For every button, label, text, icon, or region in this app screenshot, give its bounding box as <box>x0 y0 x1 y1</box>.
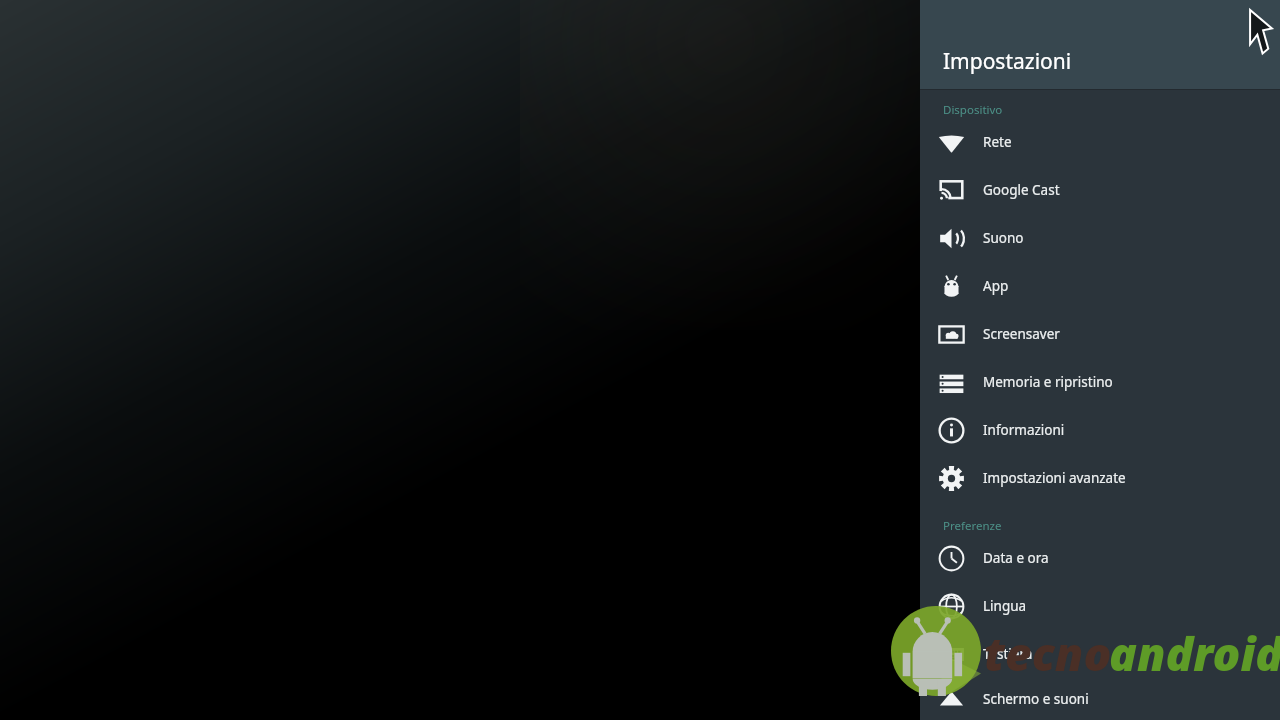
button[interactable]: Memoria e ripristino <box>920 358 1280 406</box>
button[interactable]: Data e ora <box>920 534 1280 582</box>
staticText: Dispositivo <box>943 102 1003 118</box>
staticText: Suono <box>983 229 1024 247</box>
staticText: Informazioni <box>983 421 1065 439</box>
button[interactable]: Informazioni <box>920 406 1280 454</box>
staticText: Rete <box>983 133 1012 151</box>
button[interactable]: Google Cast <box>920 166 1280 214</box>
button[interactable]: Lingua <box>920 582 1280 630</box>
button[interactable]: Rete <box>920 118 1280 166</box>
staticText: Memoria e ripristino <box>983 373 1113 391</box>
staticText: Schermo e suoni <box>983 690 1089 708</box>
button[interactable]: Impostazioni avanzate <box>920 454 1280 502</box>
staticText: Google Cast <box>983 181 1060 199</box>
staticText: Preferenze <box>943 518 1002 534</box>
staticText: Data e ora <box>983 549 1049 567</box>
button[interactable]: Tastiera <box>920 630 1280 678</box>
staticText: Impostazioni <box>943 47 1072 76</box>
button[interactable]: Screensaver <box>920 310 1280 358</box>
staticText: Lingua <box>983 597 1027 615</box>
staticText: android <box>1109 622 1280 685</box>
staticText: Screensaver <box>983 325 1060 343</box>
button[interactable]: App <box>920 262 1280 310</box>
staticText: Impostazioni avanzate <box>983 469 1126 487</box>
staticText: App <box>983 277 1009 295</box>
staticText: tecno <box>984 622 1112 685</box>
button[interactable]: Schermo e suoni <box>920 678 1280 720</box>
staticText: Tastiera <box>983 645 1033 663</box>
button[interactable]: Suono <box>920 214 1280 262</box>
